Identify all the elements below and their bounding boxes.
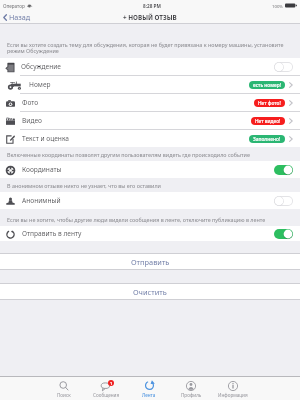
staticText: Номер	[29, 80, 51, 89]
staticText: Профиль	[181, 392, 202, 398]
button[interactable]: Лента	[128, 377, 170, 400]
staticText: 100%	[272, 3, 283, 9]
staticText: Заполнено!	[253, 136, 281, 143]
button[interactable]: Анонимный	[0, 192, 300, 209]
staticText: Отправить в ленту	[22, 229, 82, 238]
staticText: Если вы хотите создать тему для обсужден…	[7, 41, 284, 54]
staticText: Назад	[9, 12, 31, 22]
button[interactable]: Назад	[0, 11, 300, 23]
staticText: Если вы не хотите, чтобы другие люди вид…	[7, 216, 266, 223]
staticText: + НОВЫЙ ОТЗЫВ	[123, 13, 177, 22]
button[interactable]: On	[274, 165, 293, 175]
staticText: Оператор	[3, 3, 25, 9]
staticText: 1	[110, 381, 113, 386]
staticText: есть номер!	[253, 82, 281, 89]
button[interactable]: Отправить	[0, 254, 300, 269]
button[interactable]: Отправить в ленту	[0, 226, 300, 241]
button[interactable]: Видео	[0, 112, 300, 129]
staticText: Очистить	[133, 287, 167, 297]
staticText: Координаты	[22, 165, 62, 174]
staticText: Информация	[218, 392, 248, 398]
staticText: 8:28 PM	[143, 3, 161, 9]
staticText: Лента	[142, 392, 156, 398]
button[interactable]: Информация	[212, 377, 254, 400]
button[interactable]: Обсуждение	[0, 58, 300, 75]
staticText: Сообщения	[93, 392, 120, 398]
staticText: Текст и оценка	[22, 134, 69, 143]
staticText: Отправить	[131, 257, 170, 267]
staticText: Видео	[22, 116, 42, 125]
staticText: Фото	[22, 98, 39, 107]
staticText: Анонимный	[22, 196, 61, 205]
staticText: Нет фото!	[258, 100, 281, 107]
button[interactable]: Off	[274, 62, 293, 72]
button[interactable]: On	[274, 229, 293, 239]
button[interactable]: Текст и оценка	[0, 130, 300, 147]
staticText: Нет видео!	[255, 118, 281, 125]
button[interactable]: Поиск	[42, 377, 85, 400]
button[interactable]: Off	[274, 196, 293, 206]
staticText: Поиск	[57, 392, 71, 398]
button[interactable]: Координаты	[0, 161, 300, 178]
button[interactable]: Очистить	[0, 284, 300, 299]
staticText: Включенные координаты позволят другим по…	[7, 151, 250, 158]
button[interactable]: Профиль	[170, 377, 212, 400]
staticText: Обсуждение	[21, 62, 61, 71]
button[interactable]: Сообщения	[85, 377, 128, 400]
button[interactable]: Фото	[0, 94, 300, 111]
button[interactable]: Номер	[0, 76, 300, 93]
staticText: В анонимном отзыве никто не узнает, что …	[7, 182, 161, 189]
